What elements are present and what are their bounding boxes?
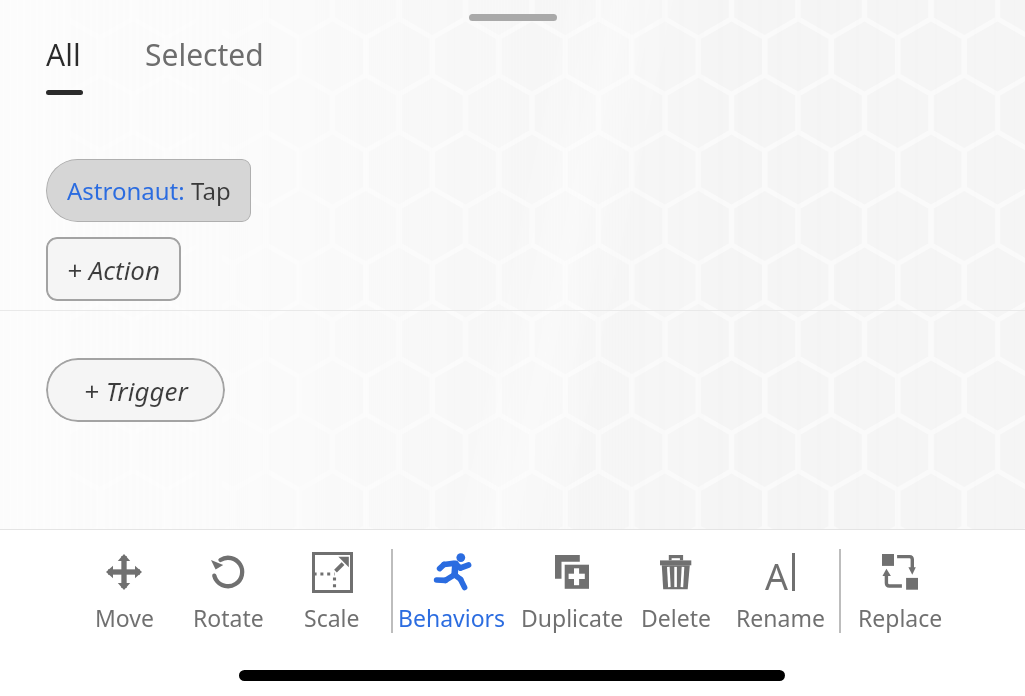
staticText: Rename xyxy=(736,602,825,633)
button[interactable]: Scale xyxy=(273,550,391,660)
button[interactable]: + Trigger xyxy=(46,358,225,422)
staticText: Selected xyxy=(145,34,264,75)
button[interactable]: Selected xyxy=(145,34,264,75)
button[interactable]: Duplicate xyxy=(513,550,631,660)
button[interactable]: Rotate xyxy=(169,550,287,660)
staticText: Behaviors xyxy=(398,602,506,633)
staticText: All xyxy=(46,34,81,75)
staticText: Scale xyxy=(304,602,360,633)
button[interactable]: Move xyxy=(65,550,183,660)
button[interactable]: Replace xyxy=(841,550,959,660)
button[interactable]: A xyxy=(721,550,839,660)
button[interactable]: + Action xyxy=(46,237,181,301)
staticText: Delete xyxy=(641,602,711,633)
staticText: Move xyxy=(95,602,154,633)
button[interactable]: Astronaut: xyxy=(46,159,251,222)
staticText: Duplicate xyxy=(521,602,624,633)
staticText: + Action xyxy=(67,252,161,287)
button[interactable]: Behaviors xyxy=(393,550,511,660)
button[interactable]: All xyxy=(46,34,83,95)
staticText: Replace xyxy=(858,602,943,633)
staticText: A xyxy=(765,552,789,592)
staticText: + Trigger xyxy=(84,373,188,408)
button[interactable]: Delete xyxy=(617,550,735,660)
staticText: Astronaut: xyxy=(67,174,191,207)
staticText: Tap xyxy=(191,174,231,207)
staticText: Rotate xyxy=(193,602,264,633)
